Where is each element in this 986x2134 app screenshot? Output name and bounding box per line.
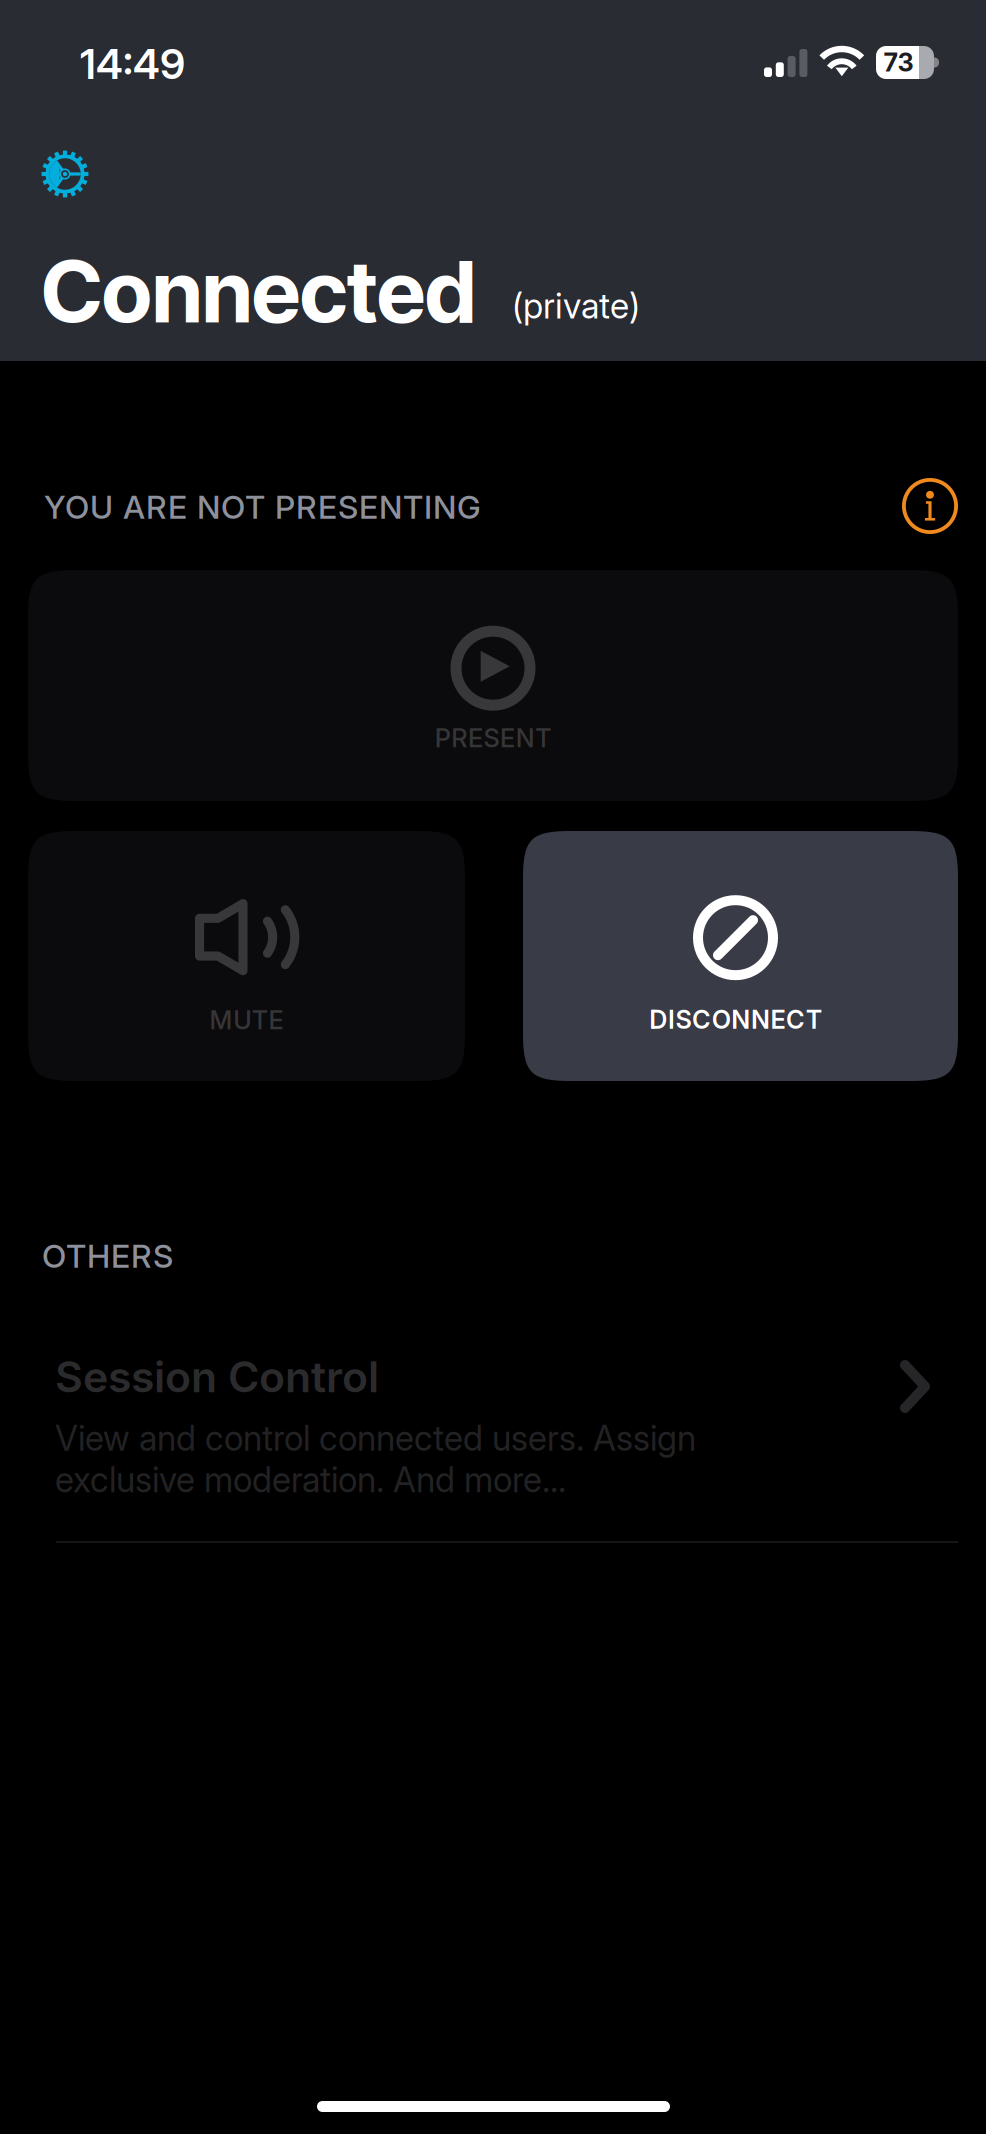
staticText: MUTE [210,1005,283,1035]
staticText: DISCONNECT [649,1004,822,1035]
button[interactable]: MUTE [28,831,465,1081]
button[interactable]: PRESENT [28,570,958,801]
button[interactable]: Session Control [28,1340,958,1545]
staticText: 14:49 [80,39,185,89]
staticText: Session Control [55,1351,379,1403]
staticText: (private) [512,285,640,327]
staticText: YOU ARE NOT PRESENTING [44,488,481,526]
staticText: OTHERS [42,1237,173,1275]
staticText: 73 [883,47,913,78]
button[interactable]: Settings [20,130,110,218]
button[interactable]: DISCONNECT [523,831,958,1081]
staticText: Connected [41,239,476,343]
button[interactable]: Information [902,478,958,534]
staticText: PRESENT [435,723,551,753]
staticText: View and control connected users. Assign… [55,1418,696,1500]
